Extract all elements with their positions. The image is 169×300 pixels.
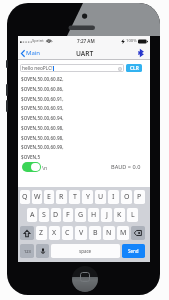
staticText: E — [47, 192, 51, 202]
button[interactable]: Main — [20, 47, 42, 59]
staticText: $OVEN,50.00,60.94, — [21, 115, 64, 121]
staticText: C — [65, 228, 70, 238]
staticText: hello neoPLC! — [22, 65, 53, 72]
staticText: $OVEN,50.00,60.91, — [21, 96, 64, 102]
button[interactable]: B — [89, 226, 101, 240]
staticText: Sprint — [32, 38, 44, 44]
staticText: J — [106, 210, 108, 220]
button[interactable]: D — [51, 208, 61, 222]
button[interactable]: X — [49, 226, 60, 240]
staticText: T — [73, 192, 77, 202]
button[interactable]: T — [69, 190, 80, 204]
button[interactable]: Newline toggle — [22, 162, 41, 172]
button[interactable]: J — [101, 208, 112, 222]
button[interactable]: E — [44, 190, 54, 204]
button[interactable]: M — [117, 226, 129, 240]
staticText: space — [79, 248, 92, 254]
staticText: P — [137, 192, 142, 202]
staticText: Main — [26, 49, 41, 57]
button[interactable]: Q — [20, 190, 30, 204]
button[interactable]: H — [88, 208, 99, 222]
staticText: $OVEN,50.00,60.86, — [21, 86, 64, 92]
button[interactable]: Shift — [20, 226, 34, 240]
button[interactable]: hello neoPLC! — [20, 64, 124, 72]
staticText: $OVEN,50.00,60.98, — [21, 125, 64, 131]
staticText: $OVEN,50.00,60.82, — [21, 76, 64, 82]
staticText: U — [98, 192, 104, 202]
staticText: 123 — [24, 249, 31, 254]
button[interactable]: P — [134, 190, 145, 204]
button[interactable]: V — [75, 226, 87, 240]
staticText: Z — [39, 228, 44, 238]
staticText: I — [112, 192, 115, 202]
button[interactable]: Y — [82, 190, 93, 204]
staticText: R — [59, 192, 64, 202]
staticText: G — [78, 210, 84, 220]
staticText: Send — [128, 248, 139, 254]
staticText: $OVEN,50.00,60.99, — [21, 144, 64, 150]
staticText: A — [30, 210, 35, 220]
staticText: $OVEN,50.00,60.93, — [21, 105, 64, 111]
staticText: $OVEN,50.00,60.98, — [21, 135, 64, 141]
staticText: 7:27 AM — [77, 38, 95, 44]
button[interactable]: G — [75, 208, 86, 222]
staticText: UART — [76, 49, 94, 58]
staticText: N — [106, 228, 112, 238]
button[interactable]: CLR — [126, 64, 142, 72]
staticText: V — [79, 228, 84, 238]
button[interactable]: I — [108, 190, 119, 204]
button[interactable]: Delete — [131, 226, 145, 240]
button[interactable]: U — [95, 190, 106, 204]
button[interactable]: R — [56, 190, 67, 204]
button[interactable]: A — [27, 208, 37, 222]
button[interactable]: N — [103, 226, 115, 240]
staticText: X — [52, 228, 57, 238]
staticText: 100% — [126, 38, 137, 44]
button[interactable]: W — [32, 190, 42, 204]
staticText: K — [117, 210, 122, 220]
staticText: Y — [86, 192, 90, 202]
button[interactable]: 123 — [20, 244, 34, 258]
button[interactable]: Send — [122, 244, 145, 258]
staticText: M — [120, 228, 127, 238]
button[interactable]: S — [39, 208, 49, 222]
button[interactable]: F — [63, 208, 73, 222]
staticText: B — [93, 228, 98, 238]
button[interactable]: Bluetooth — [135, 48, 145, 58]
staticText: CLR — [130, 65, 139, 72]
button[interactable]: C — [62, 226, 73, 240]
staticText: S — [42, 210, 46, 220]
button[interactable]: L — [127, 208, 138, 222]
button[interactable]: space — [51, 244, 120, 258]
button[interactable]: K — [114, 208, 125, 222]
staticText: $OVEN,5 — [21, 154, 41, 160]
button[interactable]: Z — [36, 226, 47, 240]
staticText: L — [131, 210, 135, 220]
staticText: Q — [22, 192, 28, 202]
staticText: H — [91, 210, 97, 220]
staticText: \n — [42, 164, 48, 171]
staticText: D — [53, 210, 59, 220]
staticText: O — [124, 192, 130, 202]
button[interactable]: Dictation — [36, 244, 49, 258]
staticText: BAUD = 0.0 — [111, 163, 141, 171]
staticText: W — [34, 192, 41, 202]
staticText: F — [66, 210, 70, 220]
button[interactable]: O — [121, 190, 132, 204]
